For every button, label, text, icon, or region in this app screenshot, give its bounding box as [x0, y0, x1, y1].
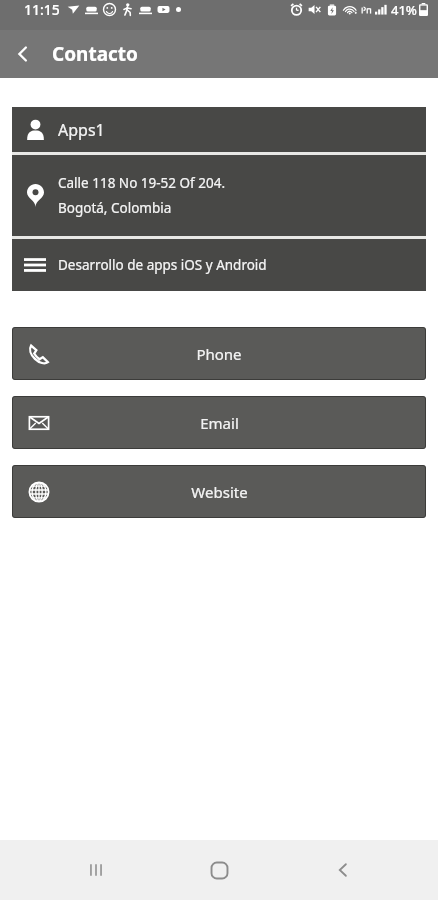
- staticText: 11:15: [24, 0, 60, 19]
- button[interactable]: Recent apps: [68, 842, 124, 898]
- staticText: Calle 118 No 19-52 Of 204.: [58, 174, 226, 192]
- button[interactable]: Home: [191, 842, 247, 898]
- button[interactable]: Email: [12, 396, 426, 449]
- button[interactable]: Back: [315, 842, 371, 898]
- button[interactable]: Back: [0, 31, 46, 77]
- staticText: Bogotá, Colombia: [58, 199, 172, 217]
- staticText: 41%: [391, 1, 417, 19]
- button[interactable]: Calle 118 No 19-52 Of 204.: [12, 155, 426, 236]
- staticText: Apps1: [58, 119, 105, 141]
- button[interactable]: Website: [12, 465, 426, 518]
- staticText: Website: [191, 482, 248, 502]
- staticText: Email: [200, 413, 239, 433]
- button[interactable]: Phone: [12, 327, 426, 380]
- staticText: Desarrollo de apps iOS y Android: [58, 256, 267, 274]
- button[interactable]: Desarrollo de apps iOS y Android: [12, 239, 426, 291]
- button[interactable]: Apps1: [12, 107, 426, 152]
- staticText: Contacto: [52, 41, 138, 67]
- staticText: Phone: [196, 344, 242, 364]
